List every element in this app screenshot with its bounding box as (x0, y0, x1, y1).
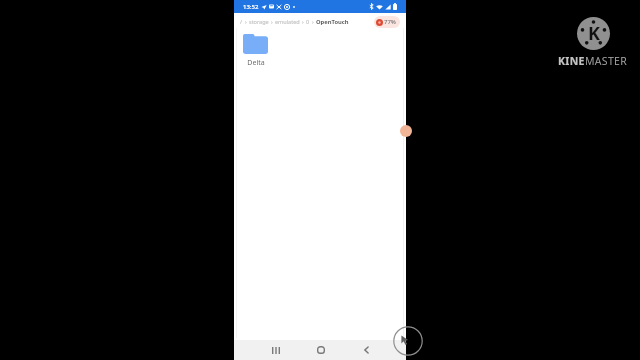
staticText: › (245, 18, 247, 25)
button[interactable]: 0 (306, 13, 310, 30)
button[interactable]: Open folder Delta (240, 34, 271, 68)
staticText: 13:52 (243, 3, 259, 11)
staticText: KINE (558, 54, 585, 68)
staticText: OpenTouch (316, 18, 349, 26)
button[interactable]: Home (307, 340, 335, 360)
button[interactable]: storage (249, 13, 269, 30)
staticText: storage (249, 18, 269, 25)
button[interactable]: Floating action (400, 125, 412, 137)
button[interactable]: 77% (374, 16, 400, 28)
button[interactable]: OpenTouch (316, 13, 349, 30)
staticText: emulated (275, 18, 300, 25)
staticText: › (302, 18, 304, 25)
staticText: › (271, 18, 273, 25)
button[interactable]: emulated (275, 13, 300, 30)
staticText: MASTER (585, 54, 628, 68)
staticText: K (588, 21, 600, 46)
button[interactable]: / (240, 13, 243, 30)
staticText: 0 (306, 18, 310, 25)
staticText: Delta (247, 58, 265, 68)
staticText: 77% (384, 18, 396, 26)
staticText: › (312, 18, 314, 25)
button[interactable]: Recent apps (262, 340, 290, 360)
button[interactable]: Back (352, 340, 380, 360)
staticText: / (240, 18, 243, 25)
